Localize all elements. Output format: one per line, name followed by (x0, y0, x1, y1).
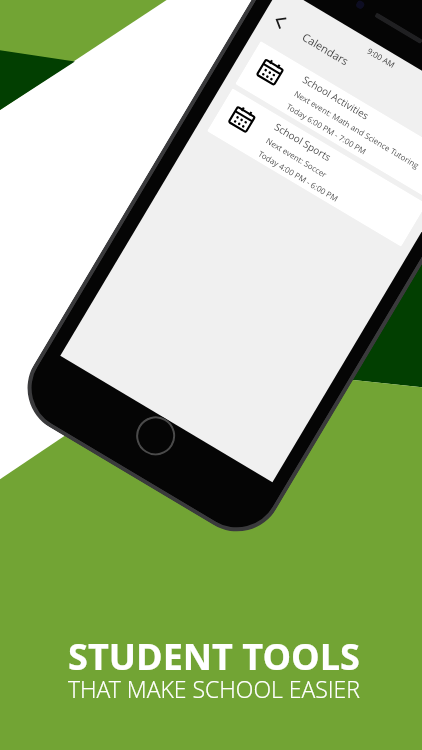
staticText: Calendars (300, 29, 352, 69)
staticText: Today 6:00 PM - 7:00 PM (285, 100, 368, 156)
staticText: STUDENT TOOLS (68, 632, 360, 681)
staticText: Next event: Math and Science Tutoring (292, 88, 422, 171)
button[interactable]: School Activities (235, 41, 422, 200)
staticText: School Sports (272, 119, 334, 164)
button[interactable]: Back (265, 6, 295, 36)
staticText: 9:00 AM (365, 45, 398, 70)
staticText: Next event: Soccer (264, 135, 329, 180)
staticText: Today 4:00 PM - 6:00 PM (257, 148, 340, 204)
staticText: School Activities (300, 72, 372, 123)
staticText: THAT MAKE SCHOOL EASIER (68, 673, 360, 704)
button[interactable]: School Sports (207, 88, 422, 247)
button[interactable]: Home (128, 408, 183, 463)
